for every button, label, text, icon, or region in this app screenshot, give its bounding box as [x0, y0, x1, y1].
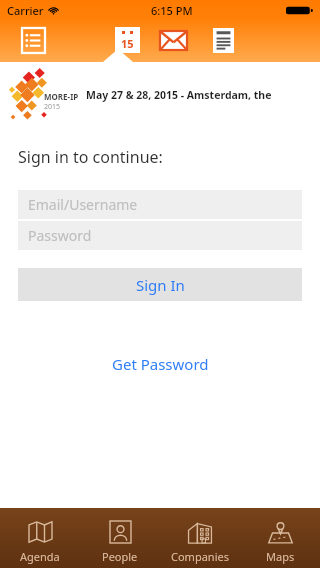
- staticText: 15: [121, 36, 134, 51]
- button[interactable]: Agenda day: [110, 23, 144, 57]
- button[interactable]: Agenda: [0, 508, 80, 568]
- staticText: Password: [28, 226, 92, 245]
- button[interactable]: Messages: [156, 23, 190, 57]
- staticText: May 27 & 28, 2015 - Amsterdam, the Nethe…: [86, 88, 320, 102]
- staticText: 2015: [44, 102, 61, 112]
- button[interactable]: Maps: [240, 508, 320, 568]
- staticText: Sign In: [136, 275, 185, 295]
- staticText: Maps: [266, 549, 295, 564]
- staticText: Email/Username: [28, 195, 138, 214]
- staticText: Carrier: [7, 3, 44, 18]
- button[interactable]: List: [16, 23, 50, 57]
- staticText: Companies: [171, 549, 229, 564]
- staticText: Get Password: [112, 354, 209, 374]
- button[interactable]: Password: [18, 221, 302, 250]
- staticText: People: [102, 549, 138, 564]
- button[interactable]: Sign In: [18, 268, 302, 301]
- staticText: 6:15 PM: [151, 3, 193, 18]
- button[interactable]: News: [206, 23, 240, 57]
- button[interactable]: People: [80, 508, 160, 568]
- staticText: Agenda: [20, 549, 60, 564]
- button[interactable]: Companies: [160, 508, 240, 568]
- button[interactable]: Email/Username: [18, 190, 302, 219]
- staticText: Sign in to continue:: [18, 146, 163, 168]
- button[interactable]: Get Password: [102, 349, 219, 379]
- staticText: MORE-IP: [44, 91, 79, 102]
